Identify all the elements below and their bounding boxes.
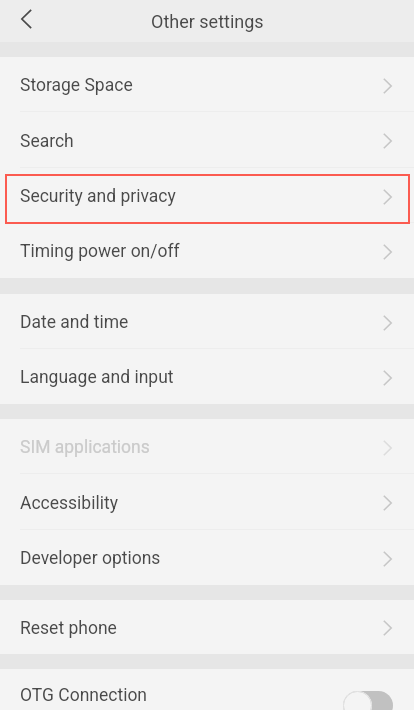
staticText: Search	[20, 131, 383, 152]
staticText: Reset phone	[20, 618, 383, 639]
button[interactable]: Storage Space	[0, 57, 414, 112]
button[interactable]: Reset phone	[0, 600, 414, 654]
button[interactable]: Developer options	[0, 530, 414, 585]
staticText: Date and time	[20, 312, 383, 333]
button[interactable]: Timing power on/off	[0, 223, 414, 278]
button[interactable]: Search	[0, 112, 414, 168]
staticText: Security and privacy	[20, 186, 383, 207]
staticText: Developer options	[20, 548, 383, 569]
staticText: Other settings	[151, 11, 264, 32]
button[interactable]: Language and input	[0, 349, 414, 404]
button[interactable]: Security and privacy	[0, 168, 414, 223]
staticText: Accessibility	[20, 493, 383, 514]
staticText: Storage Space	[20, 75, 383, 96]
button[interactable]: OTG Connection toggle	[343, 691, 393, 710]
button[interactable]: Back	[0, 0, 48, 42]
staticText: Timing power on/off	[20, 241, 383, 262]
button[interactable]: Accessibility	[0, 474, 414, 530]
staticText: SIM applications	[20, 437, 383, 458]
staticText: OTG Connection	[20, 685, 343, 706]
button[interactable]: SIM applications	[0, 419, 414, 474]
button[interactable]: Date and time	[0, 294, 414, 349]
button[interactable]: OTG Connection	[0, 669, 414, 710]
staticText: Language and input	[20, 367, 383, 388]
